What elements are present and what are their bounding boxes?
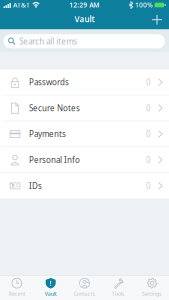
staticText: 100% (135, 1, 153, 9)
staticText: AT&T (13, 1, 30, 9)
staticText: Passwords (29, 77, 69, 87)
staticText: Settings (142, 290, 162, 297)
button[interactable]: Payments (0, 121, 169, 147)
staticText: Vault (74, 14, 94, 24)
staticText: 0 (146, 155, 151, 165)
staticText: Personal Info (29, 155, 80, 165)
button[interactable]: Contacts (68, 275, 101, 300)
staticText: IDs (29, 180, 42, 191)
staticText: Search all items (19, 36, 77, 47)
button[interactable]: Personal Info (0, 147, 169, 173)
staticText: 0 (146, 103, 151, 113)
staticText: 12:29 AM (69, 1, 99, 9)
button[interactable]: IDs (0, 173, 169, 198)
staticText: Contacts (73, 290, 95, 297)
staticText: Recent (8, 290, 25, 297)
button[interactable]: Settings (135, 275, 169, 300)
button[interactable]: Tools (101, 275, 135, 300)
staticText: Secure Notes (29, 103, 80, 113)
button[interactable]: Vault (34, 275, 68, 300)
staticText: 0 (146, 180, 151, 191)
button[interactable]: Passwords (0, 69, 169, 95)
staticText: 0 (146, 129, 151, 139)
button[interactable]: Recent (0, 275, 34, 300)
button[interactable]: Add item (145, 10, 169, 29)
staticText: Tools (112, 290, 125, 297)
staticText: Vault (45, 290, 57, 297)
button[interactable]: Secure Notes (0, 95, 169, 121)
staticText: Payments (29, 129, 66, 139)
staticText: 0 (146, 77, 151, 87)
